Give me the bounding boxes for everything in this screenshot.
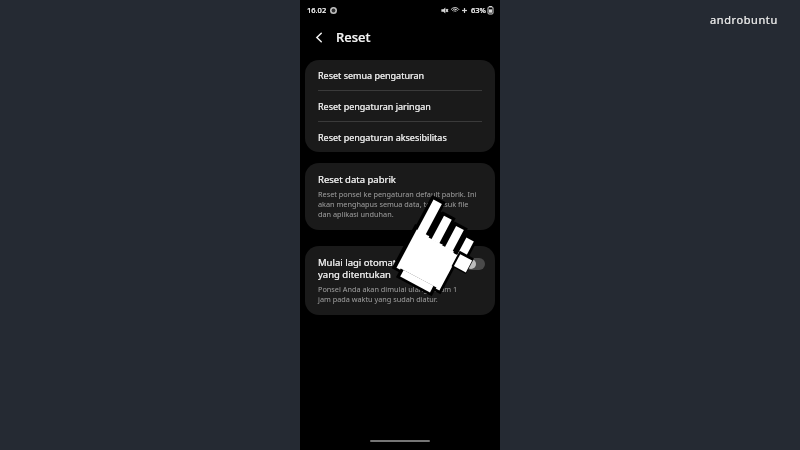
button[interactable]: Reset semua pengaturan [305, 60, 495, 90]
staticText: Mulai lagi otomatis pada waktu yang dite… [318, 256, 459, 281]
button[interactable]: Back [308, 26, 330, 48]
button[interactable]: Toggle auto restart [465, 258, 485, 270]
staticText: Reset pengaturan jaringan [318, 100, 431, 112]
button[interactable]: Reset data pabrik [305, 163, 495, 230]
button[interactable]: Reset pengaturan aksesibilitas [305, 122, 495, 152]
staticText: Reset data pabrik [318, 173, 396, 186]
staticText: androbuntu [710, 12, 778, 27]
staticText: Reset ponsel ke pengaturan default pabri… [318, 189, 483, 219]
staticText: Reset [336, 28, 371, 46]
staticText: 16.02 [307, 5, 327, 15]
staticText: 63% [471, 5, 486, 15]
staticText: Reset semua pengaturan [318, 69, 425, 81]
button[interactable]: Reset pengaturan jaringan [305, 91, 495, 121]
staticText: Ponsel Anda akan dimulai ulang dalam 1 j… [318, 284, 459, 304]
button[interactable]: Mulai lagi otomatis pada waktu yang dite… [305, 246, 495, 315]
staticText: Reset pengaturan aksesibilitas [318, 131, 447, 143]
